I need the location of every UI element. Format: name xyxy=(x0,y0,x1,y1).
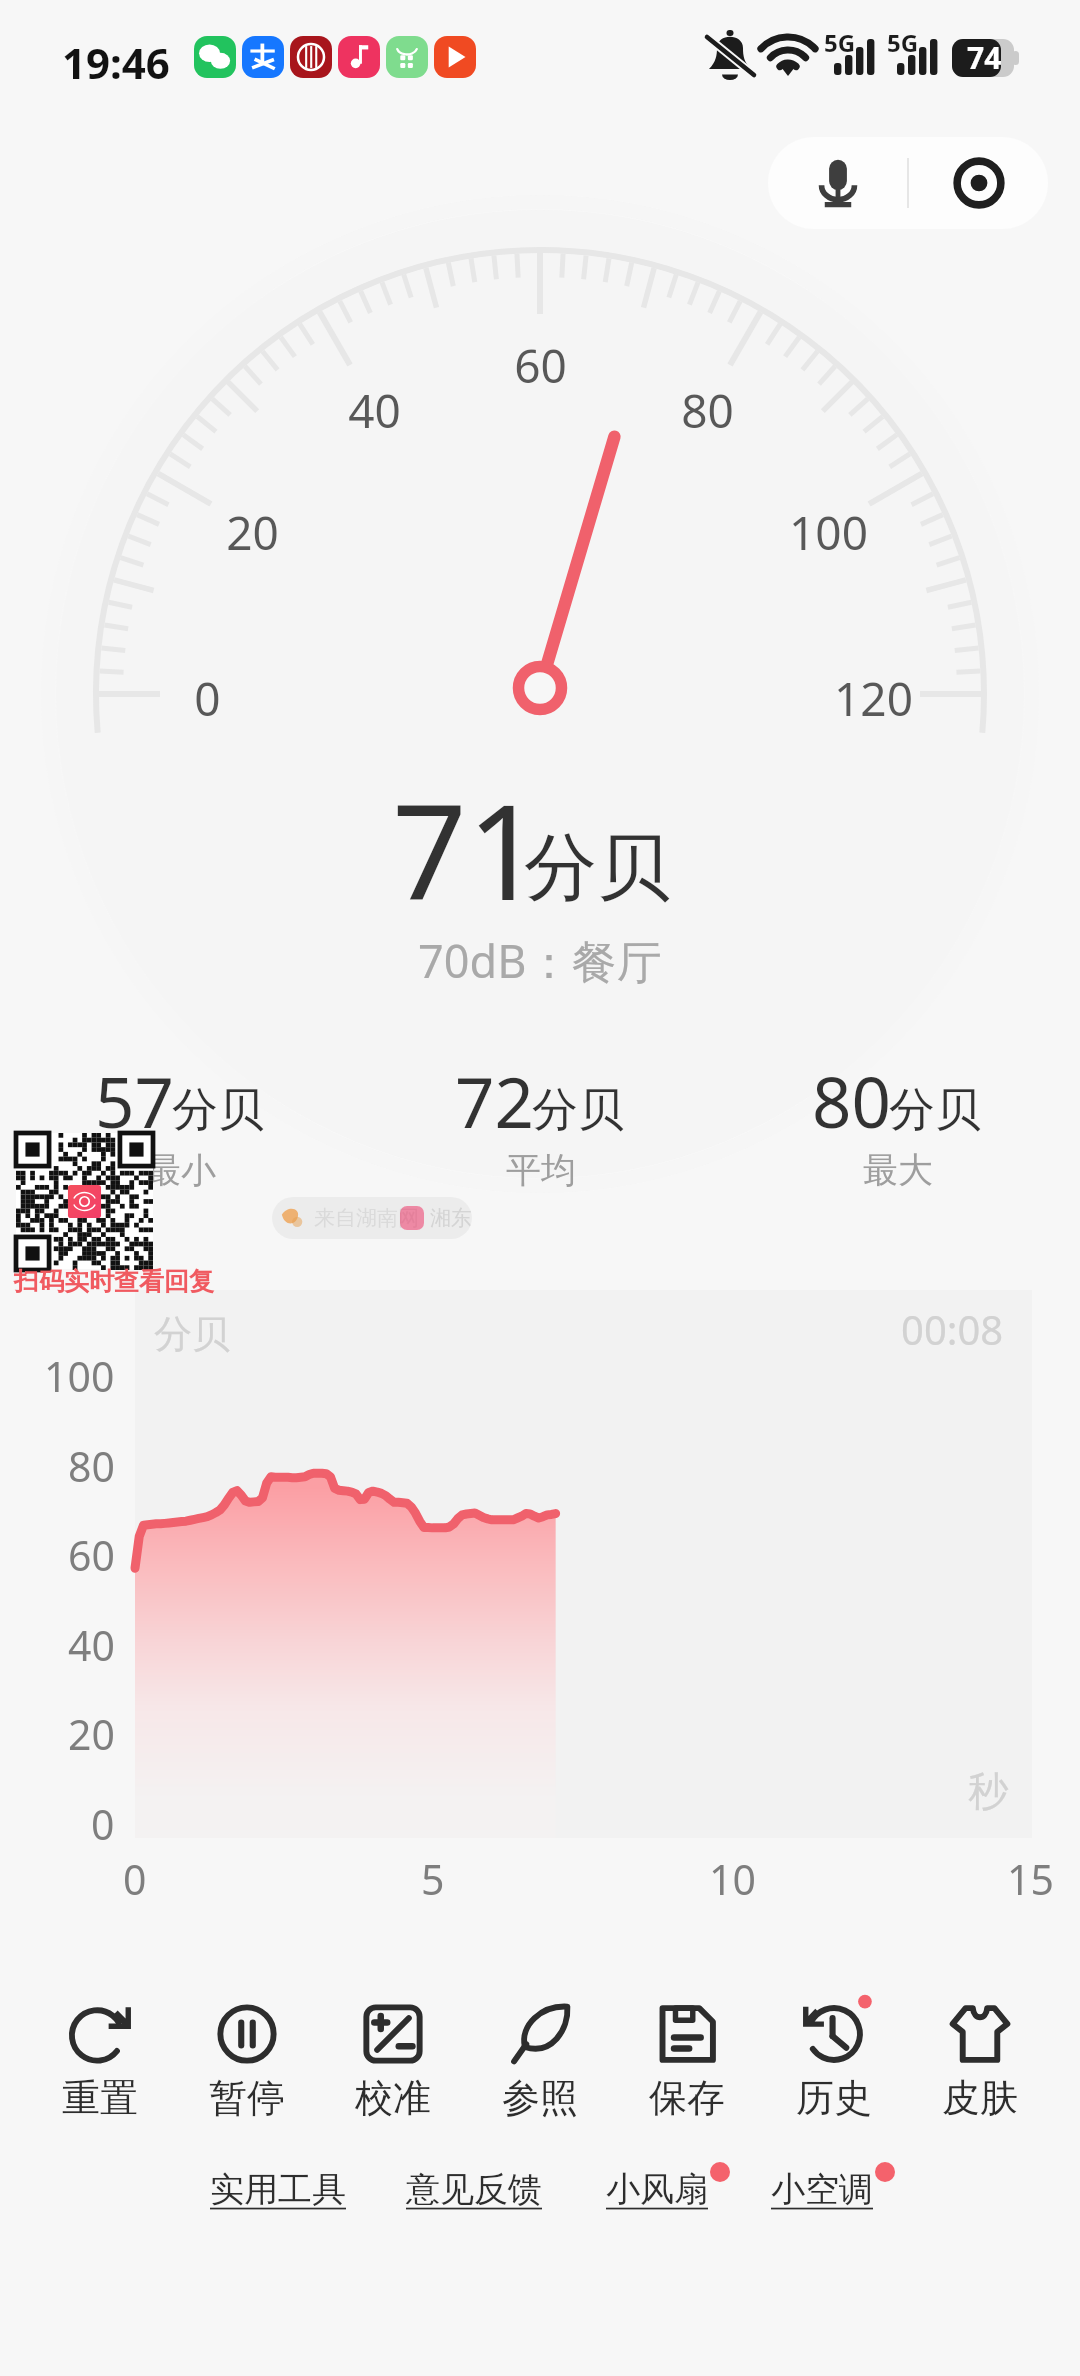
button[interactable]: 暂停 xyxy=(177,1998,317,2123)
button[interactable]: Microphone xyxy=(768,137,907,229)
staticText: 5G xyxy=(887,26,919,59)
staticText: 74 xyxy=(967,37,1002,78)
staticText: 0 xyxy=(91,1796,115,1852)
staticText: 分贝 xyxy=(172,1081,264,1139)
staticText: 10 xyxy=(709,1851,756,1907)
button[interactable]: 小空调 xyxy=(771,2168,873,2211)
button[interactable]: 57 xyxy=(30,1054,330,1192)
staticText: 57 xyxy=(95,1054,174,1148)
button[interactable]: 参照 xyxy=(470,1998,610,2123)
staticText: 20 xyxy=(68,1706,115,1762)
staticText: 72 xyxy=(455,1054,534,1148)
staticText: 00:08 xyxy=(901,1302,1004,1356)
staticText: 重置 xyxy=(62,2074,138,2122)
staticText: 5G xyxy=(824,26,856,59)
staticText: 20 xyxy=(226,501,279,564)
staticText: 分贝 xyxy=(524,822,670,914)
staticText: 分贝 xyxy=(532,1081,624,1139)
staticText: 80 xyxy=(812,1054,891,1148)
button[interactable]: 校准 xyxy=(323,1998,463,2123)
staticText: 皮肤 xyxy=(942,2074,1018,2122)
staticText: 分贝 xyxy=(154,1310,230,1358)
staticText: 70dB：餐厅 xyxy=(418,930,662,991)
staticText: 意见反馈 xyxy=(406,2168,542,2211)
staticText: 5 xyxy=(421,1851,445,1907)
staticText: 小风扇 xyxy=(606,2168,708,2211)
staticText: 保存 xyxy=(649,2074,725,2122)
staticText: 暂停 xyxy=(209,2074,285,2122)
staticText: 分贝 xyxy=(889,1081,981,1139)
staticText: 参照 xyxy=(502,2074,578,2122)
staticText: 100 xyxy=(44,1348,115,1404)
staticText: 60 xyxy=(68,1527,115,1583)
staticText: 来自湖南网 xyxy=(314,1205,419,1231)
button[interactable]: Recording indicator xyxy=(909,137,1048,229)
staticText: 71 xyxy=(392,760,542,938)
staticText: 19:46 xyxy=(62,34,170,91)
button[interactable]: 历史 xyxy=(764,1998,904,2123)
staticText: 80 xyxy=(681,379,734,442)
button[interactable]: 皮肤 xyxy=(910,1998,1050,2123)
staticText: 100 xyxy=(789,501,868,564)
staticText: 校准 xyxy=(355,2074,431,2122)
staticText: 小空调 xyxy=(771,2168,873,2211)
button[interactable]: 小风扇 xyxy=(606,2168,708,2211)
button[interactable]: 80 xyxy=(747,1054,1047,1192)
staticText: 0 xyxy=(123,1851,147,1907)
button[interactable]: 72 xyxy=(390,1054,690,1192)
staticText: 最小 xyxy=(146,1148,216,1192)
staticText: 最大 xyxy=(863,1148,933,1192)
staticText: 80 xyxy=(68,1438,115,1494)
button[interactable]: 保存 xyxy=(617,1998,757,2123)
staticText: 15 xyxy=(1007,1851,1054,1907)
button[interactable]: 意见反馈 xyxy=(406,2168,542,2211)
staticText: 实用工具 xyxy=(210,2168,346,2211)
staticText: 0 xyxy=(194,667,221,730)
staticText: 秒 xyxy=(968,1766,1008,1816)
staticText: 40 xyxy=(348,379,401,442)
staticText: 平均 xyxy=(506,1148,576,1192)
staticText: 60 xyxy=(514,334,567,397)
button[interactable]: 重置 xyxy=(30,1998,170,2123)
staticText: 扫码实时查看回复 xyxy=(14,1266,214,1297)
staticText: 历史 xyxy=(796,2074,872,2122)
staticText: 湘东莞 xyxy=(430,1205,472,1231)
staticText: 40 xyxy=(68,1617,115,1673)
staticText: 120 xyxy=(834,667,913,730)
button[interactable]: 实用工具 xyxy=(210,2168,346,2211)
